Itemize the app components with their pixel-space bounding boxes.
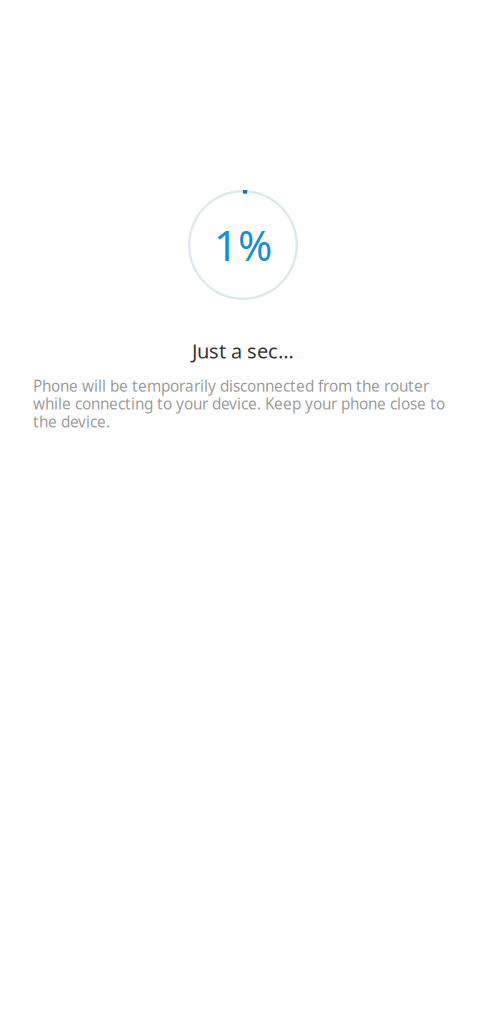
- staticText: Just a sec…: [192, 337, 294, 364]
- staticText: Phone will be temporarily disconnected f…: [33, 375, 445, 432]
- staticText: 1%: [214, 217, 272, 273]
